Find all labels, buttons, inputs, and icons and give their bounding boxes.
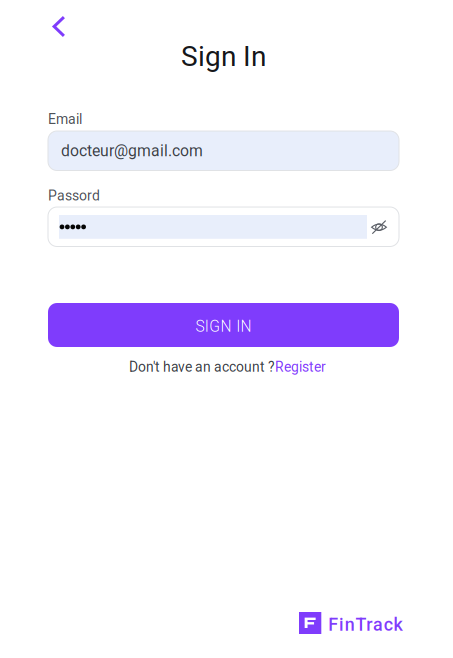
staticText: Don't have an account ? (129, 359, 275, 375)
staticText: FinTrack (328, 614, 402, 635)
staticText: Email (48, 111, 82, 127)
button[interactable]: Back (40, 7, 78, 45)
staticText: Register (275, 359, 326, 375)
staticText: SIGN IN (195, 317, 252, 336)
button[interactable]: SIGN IN (48, 303, 399, 347)
staticText: docteur@gmail.com (61, 141, 203, 160)
button[interactable]: Register (275, 359, 326, 375)
staticText: Passord (48, 187, 100, 204)
staticText: Sign In (181, 40, 266, 73)
button[interactable]: Show password (363, 211, 395, 243)
